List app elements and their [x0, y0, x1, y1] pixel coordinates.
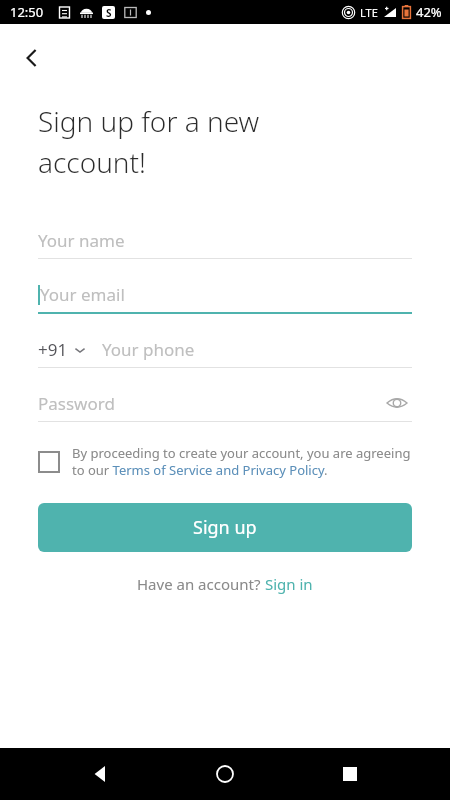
staticText: Your name — [38, 229, 125, 252]
staticText: Your email — [40, 283, 125, 306]
button[interactable]: Your name — [38, 226, 412, 259]
button[interactable]: Show password — [382, 389, 412, 417]
button[interactable]: +91 — [38, 335, 412, 368]
staticText: S — [106, 6, 112, 19]
button[interactable]: Recents — [326, 750, 374, 798]
button[interactable]: Sign up — [38, 503, 412, 552]
staticText: By proceeding to create your account, yo… — [72, 444, 424, 479]
staticText: Have an account? — [137, 574, 265, 594]
staticText: Sign in — [265, 574, 313, 594]
button[interactable]: Back — [77, 750, 125, 798]
staticText: Your phone — [102, 338, 195, 361]
staticText: 42% — [416, 3, 442, 21]
button[interactable]: Sign in — [265, 574, 313, 594]
button[interactable]: +91 — [38, 338, 86, 361]
staticText: Sign up — [193, 515, 257, 540]
button[interactable]: Your email — [38, 280, 412, 314]
staticText: LTE — [360, 5, 378, 20]
button[interactable]: By proceeding to create your account, yo… — [38, 444, 424, 479]
staticText: +91 — [38, 338, 68, 361]
staticText: Sign up for a new — [38, 102, 260, 140]
staticText: account! — [38, 143, 146, 181]
staticText: Password — [38, 392, 115, 415]
button[interactable]: Password — [38, 389, 412, 422]
staticText: 12:50 — [10, 3, 44, 21]
button[interactable]: Home — [201, 750, 249, 798]
button[interactable]: Back — [10, 36, 54, 80]
